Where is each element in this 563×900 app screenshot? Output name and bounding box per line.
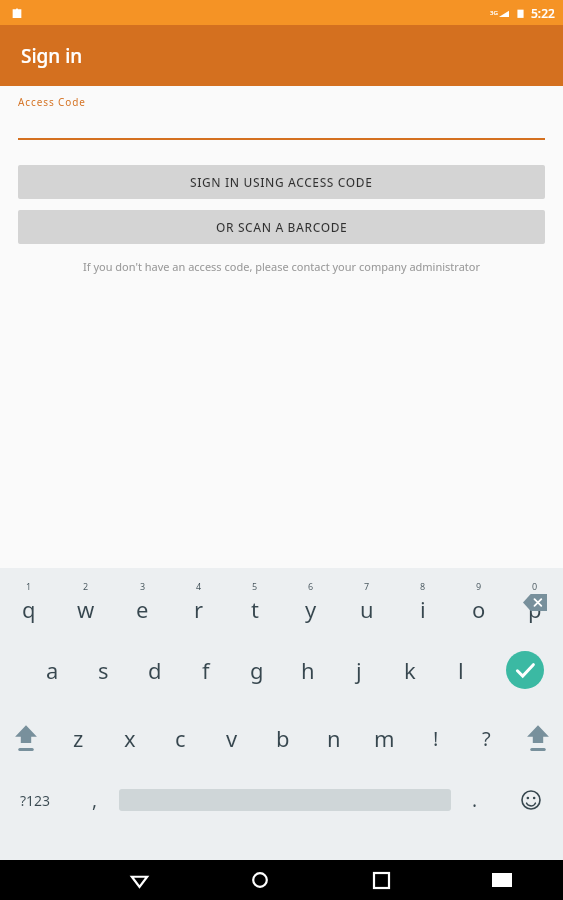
button[interactable]: Shift	[0, 704, 52, 772]
button[interactable]: f	[180, 636, 231, 704]
staticText: !	[433, 725, 439, 752]
staticText: x	[124, 723, 136, 753]
staticText: w	[77, 594, 95, 624]
button[interactable]: Space	[119, 772, 451, 828]
button[interactable]: d	[129, 636, 180, 704]
button[interactable]: x	[104, 704, 155, 772]
button[interactable]: Emoji	[499, 772, 563, 828]
button[interactable]: !	[410, 704, 461, 772]
staticText: y	[305, 594, 317, 624]
button[interactable]: a	[27, 636, 78, 704]
staticText: OR SCAN A BARCODE	[216, 219, 348, 235]
button[interactable]: Back	[117, 860, 161, 900]
staticText: h	[301, 655, 315, 685]
staticText: f	[202, 655, 210, 685]
button[interactable]: OR SCAN A BARCODE	[18, 210, 545, 244]
staticText: m	[374, 723, 395, 753]
button[interactable]: Enter	[486, 636, 563, 704]
button[interactable]: j	[333, 636, 384, 704]
staticText: l	[458, 655, 464, 685]
button[interactable]: n	[308, 704, 359, 772]
button[interactable]: Keyboard	[480, 860, 524, 900]
staticText: a	[46, 655, 59, 685]
button[interactable]: 1	[0, 568, 57, 636]
staticText: ?123	[20, 791, 51, 810]
staticText: o	[472, 594, 486, 624]
button[interactable]: Recents	[359, 860, 403, 900]
staticText: 3	[140, 580, 146, 592]
button[interactable]: 3	[114, 568, 171, 636]
staticText: z	[73, 723, 84, 753]
button[interactable]: ?123	[0, 772, 71, 828]
staticText: 6	[308, 580, 314, 592]
staticText: s	[98, 655, 109, 685]
button[interactable]: 6	[283, 568, 339, 636]
button[interactable]: 9	[451, 568, 507, 636]
staticText: 5	[252, 580, 258, 592]
staticText: j	[356, 655, 362, 685]
staticText: t	[251, 594, 259, 624]
staticText: c	[175, 723, 186, 753]
staticText: n	[327, 723, 341, 753]
button[interactable]: .	[451, 772, 499, 828]
button[interactable]: c	[155, 704, 206, 772]
button[interactable]: ?	[461, 704, 512, 772]
staticText: 8	[420, 580, 426, 592]
staticText: ?	[482, 725, 491, 752]
staticText: 1	[26, 580, 32, 592]
button[interactable]: 0	[507, 568, 563, 636]
button[interactable]: SIGN IN USING ACCESS CODE	[18, 165, 545, 199]
button[interactable]: k	[384, 636, 435, 704]
button[interactable]: g	[231, 636, 282, 704]
staticText: 4	[196, 580, 202, 592]
staticText: r	[194, 594, 204, 624]
staticText: 9	[476, 580, 482, 592]
button[interactable]: 2	[57, 568, 114, 636]
button[interactable]: v	[206, 704, 257, 772]
staticText: Access Code	[18, 95, 86, 109]
staticText: .	[472, 787, 478, 813]
staticText: i	[420, 594, 426, 624]
staticText: v	[226, 723, 238, 753]
button[interactable]: h	[282, 636, 333, 704]
button[interactable]: ,	[71, 772, 119, 828]
staticText: q	[22, 594, 36, 624]
button[interactable]: z	[52, 704, 104, 772]
staticText: u	[360, 594, 374, 624]
staticText: SIGN IN USING ACCESS CODE	[190, 174, 373, 190]
button[interactable]: 5	[227, 568, 283, 636]
button[interactable]: 7	[339, 568, 395, 636]
staticText: 0	[532, 580, 538, 592]
button[interactable]: Backspace	[507, 568, 563, 636]
staticText: g	[250, 655, 264, 685]
staticText: If you don't have an access code, please…	[0, 259, 563, 274]
button[interactable]: Home	[238, 860, 282, 900]
staticText: d	[148, 655, 162, 685]
staticText: k	[404, 655, 416, 685]
staticText: b	[276, 723, 290, 753]
button[interactable]: 8	[395, 568, 451, 636]
button[interactable]: b	[257, 704, 308, 772]
button[interactable]: s	[78, 636, 129, 704]
staticText: 7	[364, 580, 370, 592]
staticText: 5:22	[531, 5, 555, 21]
staticText: 3G	[490, 9, 498, 17]
button[interactable]: 4	[171, 568, 227, 636]
staticText: Sign in	[21, 43, 83, 69]
button[interactable]: Shift	[512, 704, 563, 772]
button[interactable]: l	[435, 636, 486, 704]
staticText: ,	[92, 787, 98, 813]
staticText: 2	[83, 580, 89, 592]
staticText: p	[528, 594, 542, 624]
staticText: e	[136, 594, 149, 624]
button[interactable]: m	[359, 704, 410, 772]
